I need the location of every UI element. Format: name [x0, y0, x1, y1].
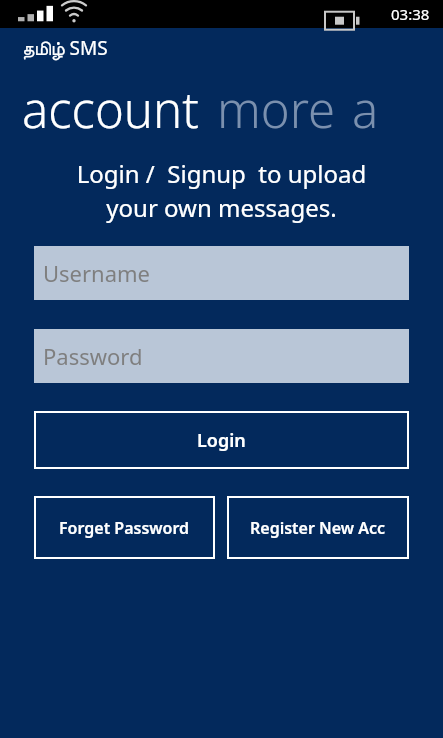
- button[interactable]: Login: [34, 411, 409, 469]
- button[interactable]: account: [22, 76, 199, 143]
- staticText: Username: [43, 258, 151, 288]
- staticText: Forget Password: [59, 517, 190, 539]
- staticText: Password: [43, 341, 143, 371]
- button[interactable]: more: [217, 76, 336, 143]
- staticText: Login: [197, 428, 246, 453]
- other: Status icons: [0, 0, 443, 28]
- button[interactable]: Password: [34, 329, 409, 383]
- button[interactable]: Forget Password: [34, 496, 215, 559]
- staticText: Login / Signup to upload your own messag…: [10, 157, 433, 225]
- staticText: 03:38: [391, 4, 430, 24]
- staticText: Register New Acc: [250, 517, 386, 539]
- button[interactable]: Username: [34, 246, 409, 300]
- staticText: தமிழ் SMS: [22, 35, 108, 61]
- button[interactable]: Register New Acc: [227, 496, 409, 559]
- staticText: a: [352, 76, 379, 143]
